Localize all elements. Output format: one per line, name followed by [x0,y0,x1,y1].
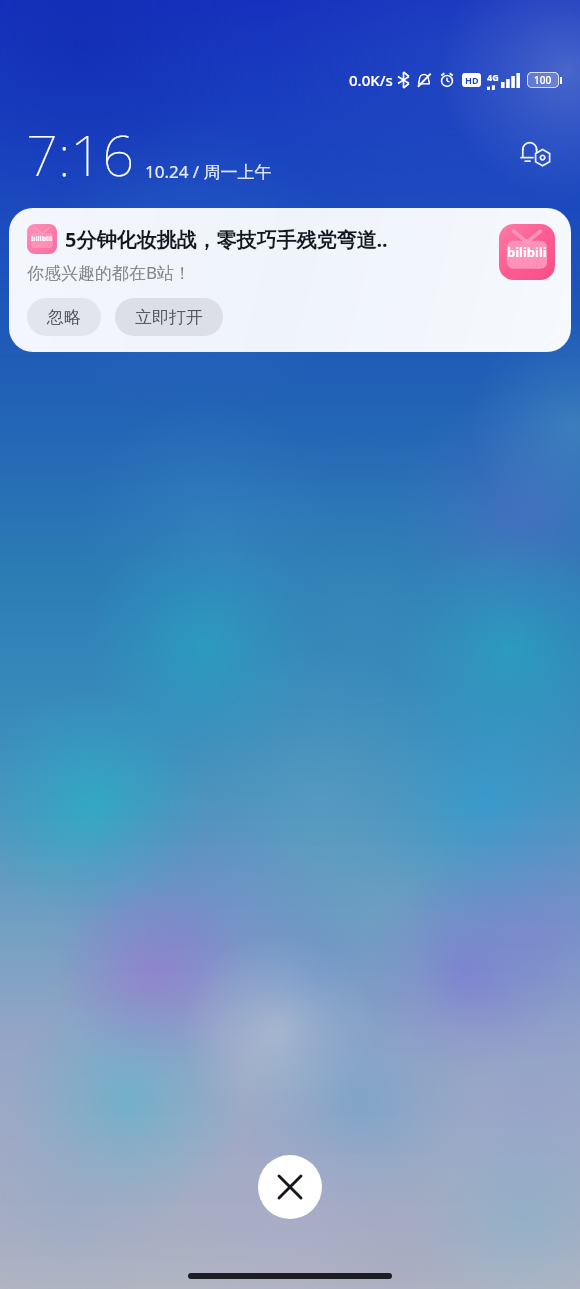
staticText: 立即打开 [135,307,203,328]
staticText: 你感兴趣的都在B站！ [27,261,192,284]
staticText: 100 [534,73,552,87]
button[interactable]: bilibili [9,208,571,352]
staticText: 忽略 [47,307,81,328]
staticText: bilibili [31,234,53,244]
staticText: 4G [487,71,499,83]
button[interactable]: 忽略 [27,298,101,336]
staticText: 5分钟化妆挑战，零技巧手残党弯道.. [65,226,388,253]
button[interactable]: Notification settings [514,132,558,176]
staticText: 0.0K/s [349,70,393,90]
staticText: bilibili [507,243,547,261]
staticText: 10.24 / 周一上午 [145,160,272,183]
button[interactable]: Close [258,1155,322,1219]
button[interactable]: 立即打开 [115,298,223,336]
staticText: HD [465,74,479,86]
staticText: 7:16 [26,116,135,192]
